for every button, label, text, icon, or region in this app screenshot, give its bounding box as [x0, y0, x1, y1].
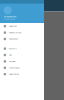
- staticText: Telegram FAQ: [9, 73, 19, 75]
- staticText: +1 234 567 8901: [4, 18, 16, 20]
- staticText: Settings: [9, 60, 16, 62]
- button[interactable]: New Channel: [0, 36, 44, 42]
- button[interactable]: Calls: [0, 52, 44, 58]
- staticText: Telegram User: [4, 15, 17, 18]
- staticText: Contacts: [9, 48, 17, 50]
- staticText: New Secret Chat: [9, 32, 22, 34]
- button[interactable]: New Secret Chat: [0, 29, 44, 36]
- staticText: New Channel: [9, 38, 18, 40]
- staticText: New Group: [9, 25, 17, 27]
- button[interactable]: Contacts: [0, 45, 44, 52]
- button[interactable]: Telegram FAQ: [0, 71, 44, 77]
- staticText: Invite Friends: [9, 67, 20, 69]
- button[interactable]: New Group: [0, 23, 44, 29]
- button[interactable]: Invite Friends: [0, 65, 44, 71]
- staticText: Calls: [9, 54, 12, 56]
- button[interactable]: Settings: [0, 58, 44, 65]
